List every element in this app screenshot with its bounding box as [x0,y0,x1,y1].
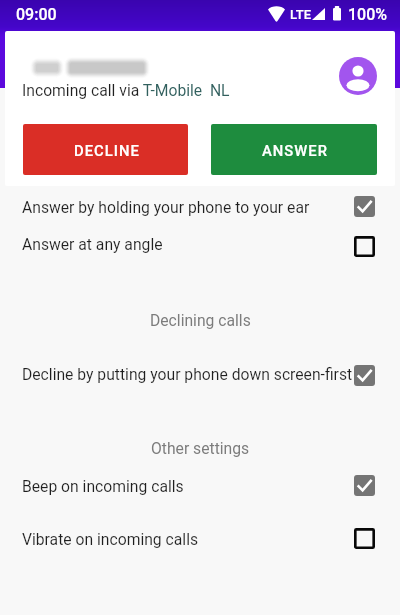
button[interactable]: Answer by holding your phone to your ear [0,189,400,225]
button[interactable]: Decline by putting your phone down scree… [0,356,400,392]
staticText: Answer by holding your phone to your ear [22,198,310,216]
staticText: 100% [348,5,388,24]
other: Checked [354,196,375,217]
other: Checked [354,475,375,496]
staticText: Other settings [151,439,250,457]
button[interactable]: Vibrate on incoming calls [0,521,400,557]
button[interactable]: DECLINE [23,124,188,175]
staticText: ANSWER [262,142,328,159]
staticText: DECLINE [74,142,140,159]
other: Unchecked [354,236,375,257]
staticText: Decline by putting your phone down scree… [22,365,353,383]
staticText: Beep on incoming calls [22,477,184,495]
button[interactable]: Incoming call via T-Mobile NL [5,31,395,186]
button[interactable]: Beep on incoming calls [0,468,400,504]
button[interactable]: ANSWER [211,124,377,175]
other: Checked [354,365,375,386]
staticText: Answer at any angle [22,235,163,253]
other: Unchecked [354,528,375,549]
staticText: Declining calls [150,311,251,329]
staticText: LTE [290,7,311,22]
button[interactable]: Answer at any angle [0,226,400,262]
staticText: Vibrate on incoming calls [22,530,199,548]
staticText: 09:00 [16,5,57,24]
staticText: Incoming call via T-Mobile NL [22,81,230,99]
other: Caller avatar [339,57,377,95]
